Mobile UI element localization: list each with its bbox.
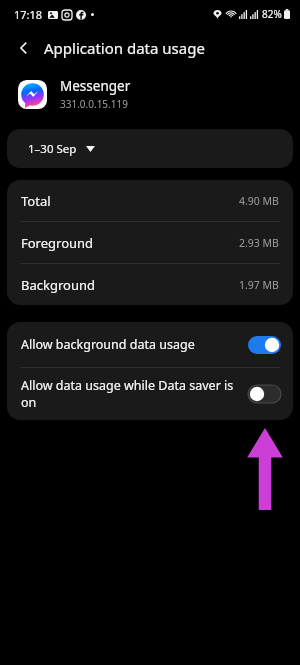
staticText: 4.90 MB	[239, 194, 279, 208]
staticText: Allow background data usage	[21, 336, 195, 353]
staticText: Messenger	[60, 77, 131, 95]
button[interactable]: Background	[7, 264, 293, 305]
staticText: 331.0.0.15.119	[60, 97, 128, 111]
staticText: 82%	[262, 7, 282, 21]
staticText: Background	[21, 276, 95, 294]
staticText: Allow data usage while Data saver is on	[21, 377, 240, 411]
button[interactable]: Allow background data usage	[7, 322, 293, 367]
button[interactable]: 1–30 Sep	[7, 129, 293, 168]
other: Switch on	[248, 336, 281, 354]
staticText: Total	[21, 192, 51, 210]
button[interactable]: Foreground	[7, 222, 293, 263]
staticText: Application data usage	[44, 38, 205, 58]
button[interactable]: Allow data usage while Data saver is on	[7, 368, 293, 420]
button[interactable]: Back	[8, 32, 40, 64]
staticText: Foreground	[21, 234, 94, 252]
other: Switch off	[248, 385, 281, 403]
staticText: 17:18	[14, 7, 43, 22]
button[interactable]: Total	[7, 180, 293, 221]
staticText: 1–30 Sep	[28, 141, 77, 157]
staticText: 2.93 MB	[239, 236, 279, 250]
staticText: 1.97 MB	[239, 278, 279, 292]
